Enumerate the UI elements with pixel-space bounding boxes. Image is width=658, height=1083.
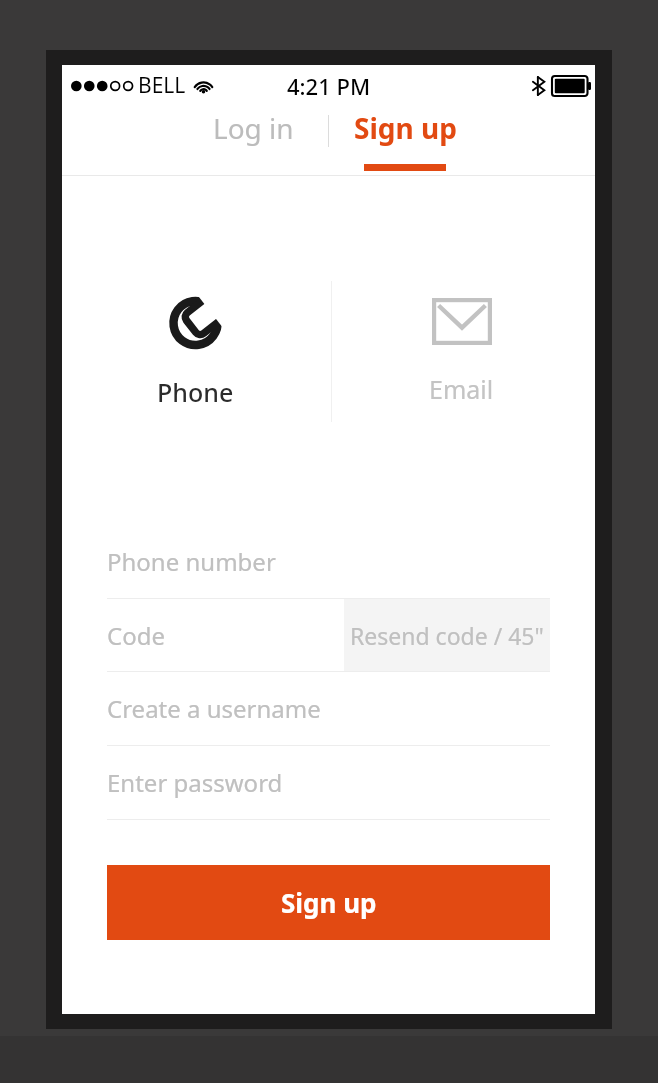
staticText: Resend code / 45" [350,620,544,651]
other: Phone [168,293,223,353]
staticText: Enter password [107,766,283,799]
button[interactable]: Log in [177,106,329,176]
staticText: Sign up [281,885,377,920]
button[interactable]: Email [328,272,595,420]
other: Email [432,298,492,345]
button[interactable]: Phone number [107,525,550,598]
staticText: Log in [213,109,294,147]
staticText: Code [107,619,165,652]
staticText: Email [429,372,494,406]
button[interactable]: Sign up [329,106,481,176]
button[interactable]: Resend code / 45" [344,599,550,671]
button[interactable]: Phone [62,272,328,420]
staticText: BELL [138,71,186,100]
staticText: Sign up [354,109,457,147]
staticText: Create a username [107,692,321,725]
button[interactable]: Sign up [107,865,550,940]
button[interactable]: Enter password [107,746,550,819]
button[interactable]: Code [107,599,344,671]
staticText: Phone [157,375,234,409]
staticText: 4:21 PM [287,71,371,101]
button[interactable]: Create a username [107,672,550,745]
staticText: Phone number [107,545,276,578]
